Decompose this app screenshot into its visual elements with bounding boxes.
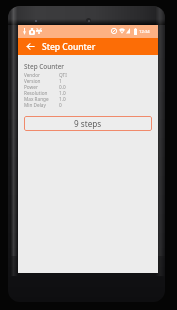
staticText: 0 xyxy=(59,102,62,108)
staticText: Version xyxy=(24,78,41,84)
staticText: Min Delay xyxy=(24,102,46,108)
staticText: 1 xyxy=(59,78,62,84)
staticText: 0.0 xyxy=(59,84,66,90)
staticText: Step Counter xyxy=(24,62,65,71)
staticText: 12:34 xyxy=(139,29,150,35)
button[interactable]: Back xyxy=(18,38,42,55)
staticText: QTI xyxy=(59,72,67,78)
staticText: 1.0 xyxy=(59,96,66,102)
staticText: Step Counter xyxy=(42,41,96,53)
staticText: 9 steps xyxy=(74,118,102,129)
staticText: Vendor xyxy=(24,72,40,78)
staticText: 1.0 xyxy=(59,90,66,96)
staticText: Resolution xyxy=(24,90,48,96)
staticText: Max Range xyxy=(24,96,49,102)
staticText: Power xyxy=(24,84,38,90)
button[interactable]: 9 steps xyxy=(24,116,152,131)
